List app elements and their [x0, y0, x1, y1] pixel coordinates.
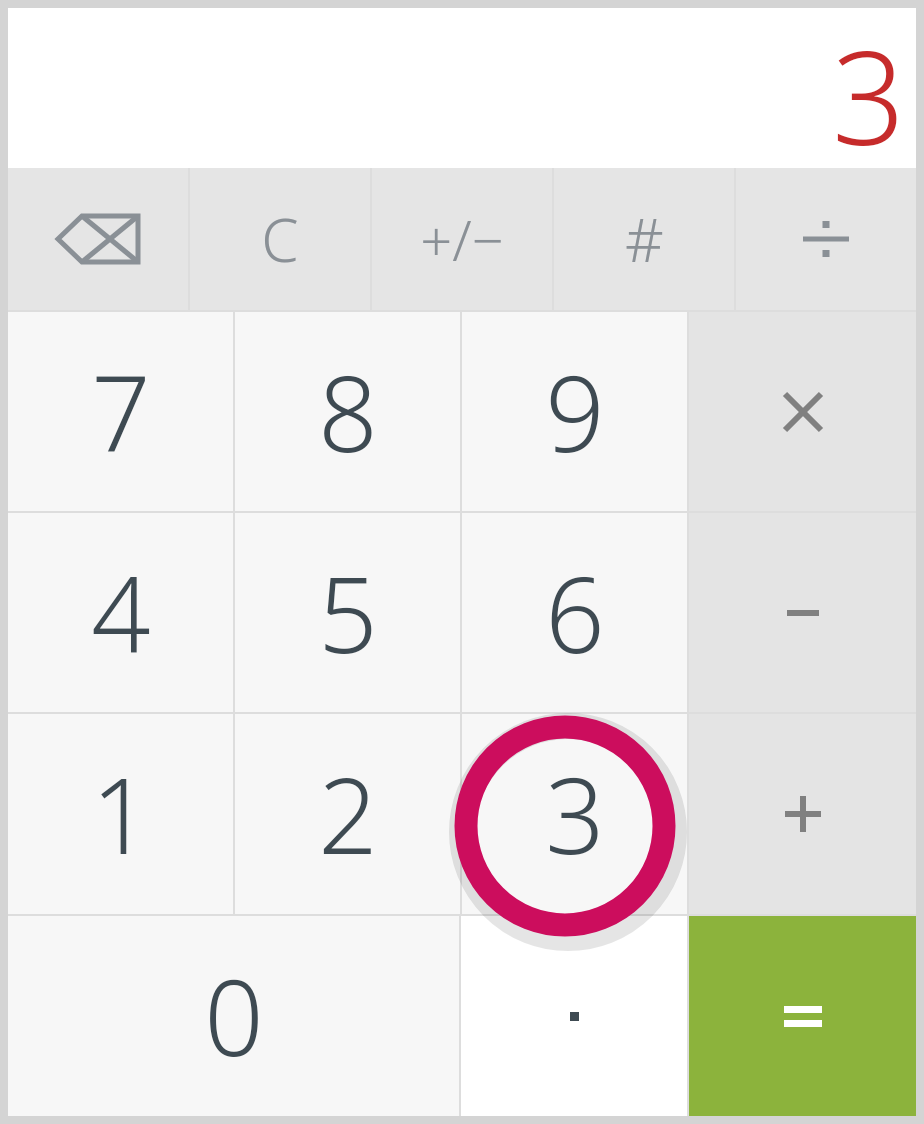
button[interactable]: 1: [8, 714, 233, 914]
staticText: 3: [832, 8, 906, 168]
button[interactable]: #: [554, 168, 734, 310]
staticText: 3: [545, 743, 605, 885]
button[interactable]: Add: [689, 714, 916, 914]
button[interactable]: Backspace: [8, 168, 188, 310]
button[interactable]: 8: [235, 312, 460, 511]
button[interactable]: 4: [8, 513, 233, 712]
button[interactable]: Multiply: [689, 312, 916, 511]
button[interactable]: Divide: [736, 168, 916, 310]
button[interactable]: 9: [462, 312, 687, 511]
button[interactable]: [461, 916, 687, 1116]
staticText: 8: [318, 341, 378, 483]
staticText: 7: [91, 341, 151, 483]
button[interactable]: Equals: [689, 916, 916, 1116]
staticText: 9: [545, 341, 605, 483]
button[interactable]: 7: [8, 312, 233, 511]
button[interactable]: 2: [235, 714, 460, 914]
staticText: 4: [91, 542, 151, 684]
staticText: 2: [318, 743, 378, 885]
button[interactable]: +/−: [372, 168, 552, 310]
button[interactable]: 3: [462, 714, 687, 914]
button[interactable]: 6: [462, 513, 687, 712]
staticText: 0: [204, 945, 264, 1087]
staticText: 5: [318, 542, 378, 684]
staticText: #: [625, 198, 664, 280]
button[interactable]: 5: [235, 513, 460, 712]
staticText: C: [261, 198, 299, 280]
button[interactable]: 0: [8, 916, 459, 1116]
staticText: +/−: [420, 201, 504, 277]
staticText: 1: [91, 743, 151, 885]
button[interactable]: Subtract: [689, 513, 916, 712]
staticText: 6: [545, 542, 605, 684]
button[interactable]: C: [190, 168, 370, 310]
